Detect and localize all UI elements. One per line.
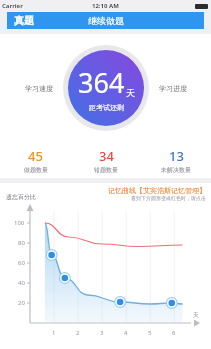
staticText: 34 (99, 147, 114, 165)
button[interactable]: 45 (0, 142, 71, 178)
button[interactable]: 学习速度 (25, 84, 53, 93)
staticText: 记忆曲线【艾宾浩斯记忆管理】 (108, 186, 206, 195)
staticText: 3 (100, 329, 104, 337)
staticText: 80 (18, 239, 25, 247)
staticText: 遗忘百分比 (6, 193, 36, 201)
staticText: Carrier (2, 2, 23, 10)
staticText: 2 (76, 329, 80, 337)
staticText: 100 (14, 219, 25, 227)
staticText: 看到下方圆形变成红色时，请点击 (131, 195, 206, 201)
staticText: 364 (78, 64, 125, 101)
staticText: 45 (28, 147, 43, 165)
staticText: 5 (148, 329, 152, 337)
staticText: 12:10 AM (92, 2, 119, 10)
other: Battery (195, 4, 208, 9)
staticText: 继续做题 (88, 15, 124, 26)
staticText: 距考试还剩 (89, 103, 124, 112)
staticText: 1 (52, 329, 56, 337)
staticText: 20 (18, 299, 25, 307)
button[interactable]: 学习进度 (159, 84, 187, 93)
staticText: 真题 (14, 14, 34, 27)
button[interactable]: 记忆曲线【艾宾浩斯记忆管理】 (108, 186, 206, 201)
staticText: 天 (193, 311, 199, 319)
staticText: 做题数量 (24, 166, 48, 174)
staticText: 错题数量 (94, 166, 118, 174)
staticText: 天 (126, 87, 135, 98)
staticText: 4 (124, 329, 128, 337)
staticText: 40 (18, 279, 25, 287)
staticText: 13 (169, 147, 184, 165)
staticText: 6 (172, 329, 176, 337)
button[interactable]: 34 (71, 142, 141, 178)
button[interactable]: 真题 (7, 12, 204, 29)
staticText: 未解决数量 (161, 166, 191, 174)
staticText: 60 (18, 259, 25, 267)
button[interactable]: 13 (141, 142, 211, 178)
